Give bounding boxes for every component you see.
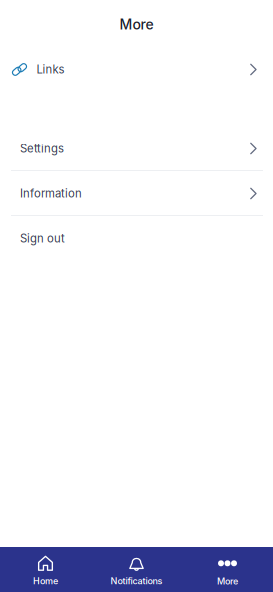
staticText: Information bbox=[20, 187, 82, 200]
button[interactable]: Notifications bbox=[91, 547, 182, 592]
button[interactable]: Settings bbox=[0, 126, 273, 171]
staticText: More bbox=[217, 576, 238, 587]
staticText: Notifications bbox=[110, 575, 162, 586]
button[interactable]: Information bbox=[0, 171, 273, 216]
staticText: Sign out bbox=[20, 232, 65, 245]
button[interactable]: More bbox=[182, 547, 273, 592]
button[interactable]: Links bbox=[0, 47, 273, 92]
button[interactable]: Home bbox=[0, 547, 91, 592]
button[interactable]: Sign out bbox=[0, 216, 273, 261]
staticText: Home bbox=[33, 575, 58, 586]
staticText: More bbox=[119, 16, 153, 33]
staticText: Settings bbox=[20, 142, 64, 155]
staticText: Links bbox=[36, 63, 64, 76]
